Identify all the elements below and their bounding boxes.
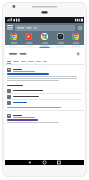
button[interactable]: [36, 60, 41, 64]
button[interactable]: [7, 94, 82, 99]
button[interactable]: Play Store: [37, 32, 52, 45]
button[interactable]: [15, 25, 75, 31]
button[interactable]: YouTube: [21, 32, 36, 45]
button[interactable]: More options: [75, 23, 84, 32]
button[interactable]: Voice search: [76, 52, 80, 56]
button[interactable]: [43, 60, 47, 64]
button[interactable]: [28, 60, 34, 64]
button[interactable]: [7, 100, 82, 105]
button[interactable]: [21, 60, 26, 64]
button[interactable]: [5, 113, 84, 125]
button[interactable]: [7, 88, 82, 93]
button[interactable]: Chrome: [6, 32, 21, 45]
button[interactable]: Site: [53, 32, 68, 45]
button[interactable]: Voice search: [7, 50, 82, 57]
button[interactable]: [5, 67, 84, 83]
button[interactable]: Menu: [5, 23, 15, 32]
button[interactable]: [13, 60, 19, 64]
button[interactable]: [7, 60, 11, 64]
button[interactable]: Chrome site: [68, 32, 83, 45]
